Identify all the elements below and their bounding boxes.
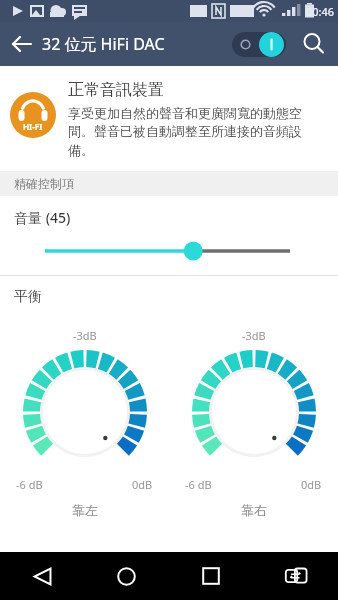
staticText: -6 dB [16, 477, 43, 492]
staticText: -3dB [73, 328, 97, 343]
staticText: 精確控制項 [14, 176, 74, 191]
button[interactable]: HiFi DAC toggle [232, 32, 286, 57]
button[interactable]: Switch screen [253, 552, 338, 600]
button[interactable]: 音量 (45) [0, 196, 338, 275]
staticText: -3dB [242, 328, 266, 343]
button[interactable]: Home [84, 552, 168, 600]
staticText: 音量 (45) [14, 208, 71, 227]
staticText: 平衡 [14, 288, 42, 306]
staticText: 靠左 [72, 502, 98, 518]
staticText: 享受更加自然的聲音和更廣闊寬的動態空間。聲音已被自動調整至所連接的音頻設備。 [68, 105, 324, 159]
staticText: HI-FI [23, 121, 43, 132]
button[interactable]: Recent apps [168, 552, 253, 600]
staticText: 0dB [301, 477, 322, 492]
button[interactable]: Balance 靠左 [0, 328, 169, 518]
staticText: 靠右 [241, 502, 267, 518]
staticText: 正常音訊裝置 [68, 80, 164, 100]
staticText: 00:46 [306, 4, 335, 19]
staticText: 32 位元 HiFi DAC [42, 33, 165, 55]
button[interactable]: Back [0, 22, 44, 66]
button[interactable]: Balance 靠右 [169, 328, 338, 518]
staticText: 0dB [132, 477, 153, 492]
staticText: -6 dB [185, 477, 212, 492]
button[interactable]: Back [0, 552, 84, 600]
button[interactable]: Search [290, 22, 338, 66]
